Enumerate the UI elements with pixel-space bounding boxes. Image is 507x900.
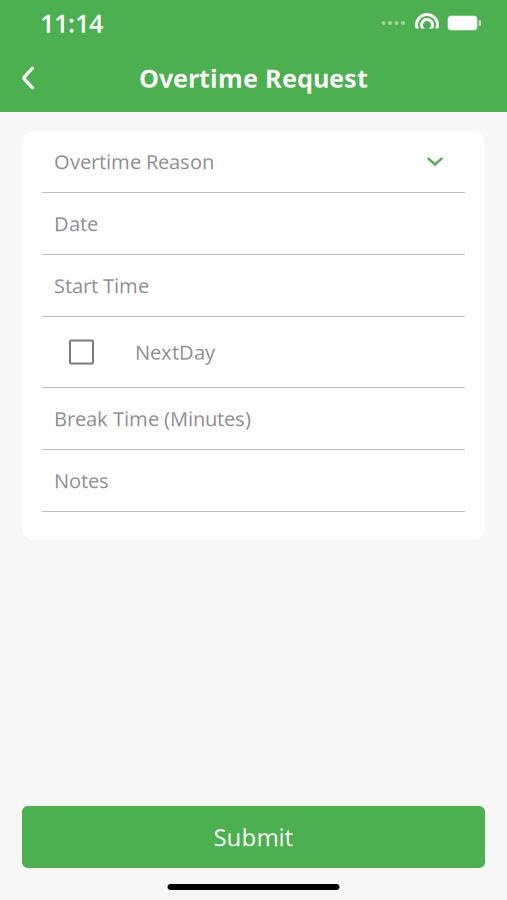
- staticText: Break Time (Minutes): [54, 405, 251, 432]
- staticText: Submit: [213, 821, 293, 853]
- staticText: Overtime Request: [139, 61, 368, 95]
- button[interactable]: Date: [42, 193, 465, 255]
- staticText: Start Time: [54, 272, 149, 299]
- button[interactable]: Break Time (Minutes): [42, 388, 465, 450]
- staticText: NextDay: [135, 339, 215, 365]
- staticText: 11:14: [40, 6, 103, 40]
- button[interactable]: NextDay: [42, 317, 465, 388]
- button[interactable]: Notes: [42, 450, 465, 512]
- button[interactable]: Submit: [22, 806, 485, 868]
- button[interactable]: Back: [0, 53, 56, 103]
- staticText: Notes: [54, 467, 109, 494]
- staticText: Overtime Reason: [54, 148, 214, 175]
- button[interactable]: Start Time: [42, 255, 465, 317]
- staticText: Date: [54, 210, 98, 237]
- button[interactable]: Overtime Reason: [42, 131, 465, 193]
